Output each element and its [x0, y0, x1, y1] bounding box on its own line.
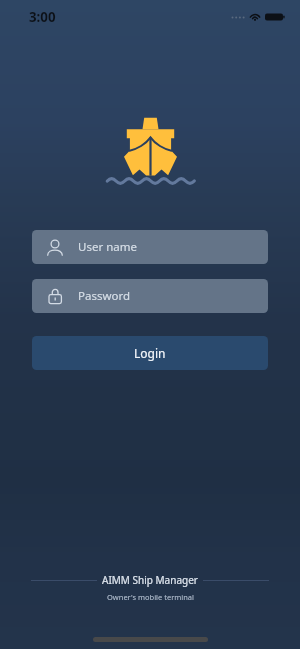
staticText: Password: [78, 288, 131, 304]
button[interactable]: User name: [32, 230, 268, 264]
other: AIMM Ship Manager logo: [107, 117, 194, 188]
staticText: Login: [134, 345, 166, 361]
staticText: Owner's mobile terminal: [107, 592, 194, 602]
staticText: AIMM Ship Manager: [102, 573, 198, 587]
button[interactable]: Password: [32, 279, 268, 313]
button[interactable]: Login: [32, 336, 268, 370]
staticText: User name: [78, 239, 137, 255]
staticText: 3:00: [29, 8, 56, 26]
